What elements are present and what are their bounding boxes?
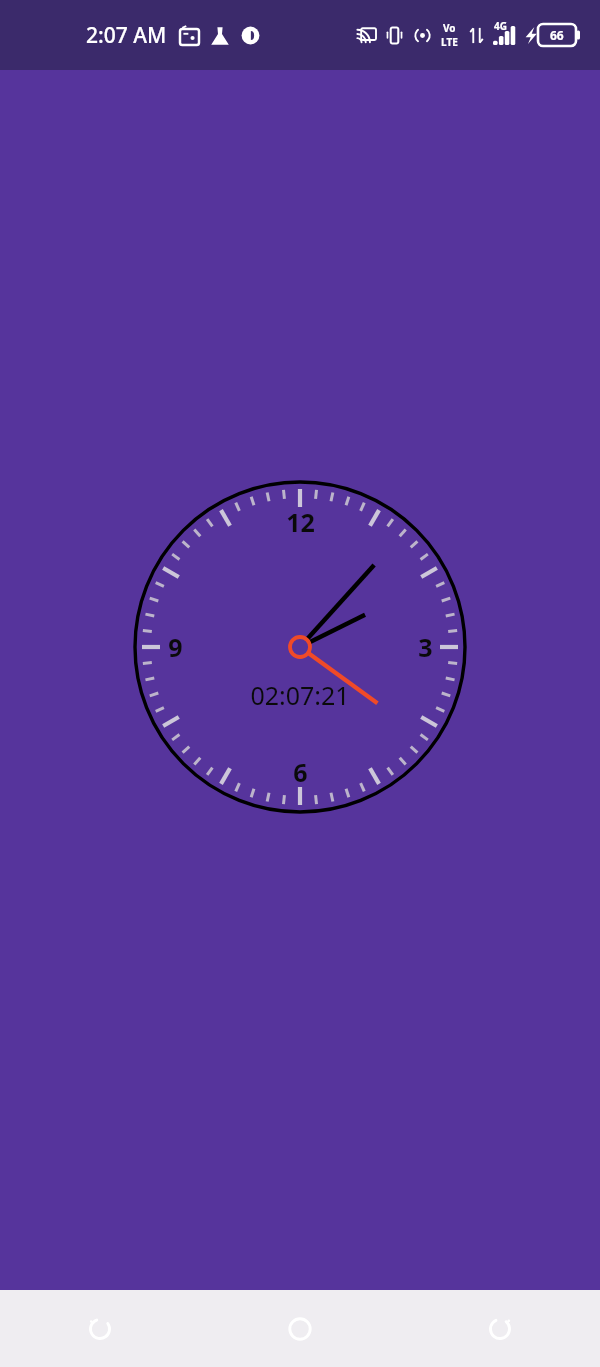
button[interactable]: Analog clock 02:07:21 — [130, 477, 470, 817]
staticText: 2:07 AM — [86, 21, 167, 50]
staticText: 4G — [494, 19, 507, 33]
staticText: 9 — [168, 630, 183, 664]
staticText: 3 — [418, 630, 433, 664]
staticText: LTE — [441, 35, 458, 49]
staticText: Vo — [443, 21, 456, 35]
staticText: 6 — [293, 755, 308, 789]
staticText: 02:07:21 — [250, 678, 350, 712]
staticText: 12 — [286, 505, 315, 539]
staticText: 66 — [550, 27, 564, 43]
